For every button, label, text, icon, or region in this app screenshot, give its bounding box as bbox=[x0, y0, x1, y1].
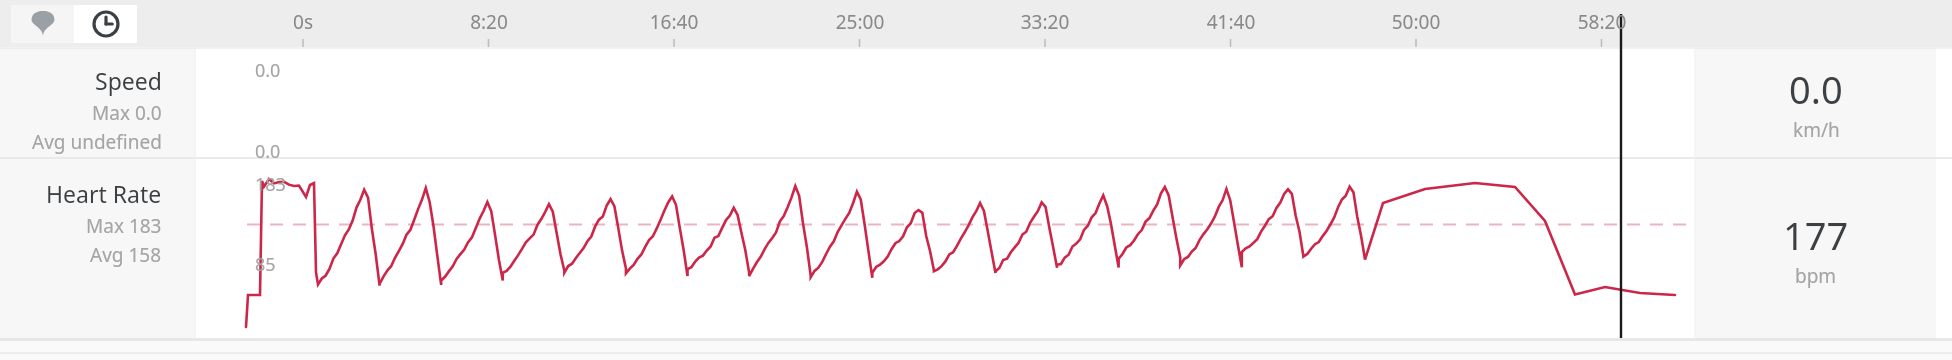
staticText: 0.0 bbox=[255, 139, 281, 164]
staticText: Max 0.0 bbox=[92, 100, 162, 126]
staticText: 16:40 bbox=[614, 9, 734, 35]
staticText: bpm bbox=[1795, 263, 1837, 289]
staticText: Speed bbox=[95, 65, 162, 96]
button[interactable]: 0.0 bbox=[1696, 48, 1936, 158]
staticText: Avg 158 bbox=[90, 242, 162, 268]
staticText: 0.0 bbox=[255, 58, 281, 83]
staticText: 33:20 bbox=[985, 9, 1105, 35]
staticText: 183 bbox=[255, 172, 286, 197]
staticText: 0.0 bbox=[1789, 63, 1843, 115]
staticText: 85 bbox=[255, 252, 276, 277]
button[interactable]: Show chart bbox=[74, 5, 137, 43]
staticText: 58:20 bbox=[1542, 9, 1662, 35]
button[interactable]: Show map bbox=[11, 5, 74, 43]
staticText: Max 183 bbox=[86, 213, 162, 239]
button[interactable]: 177 bbox=[1696, 159, 1936, 339]
staticText: 0s bbox=[243, 9, 363, 35]
staticText: Avg undefined bbox=[32, 129, 162, 155]
staticText: 25:00 bbox=[800, 9, 920, 35]
staticText: 50:00 bbox=[1356, 9, 1476, 35]
staticText: 41:40 bbox=[1171, 9, 1291, 35]
staticText: km/h bbox=[1793, 117, 1840, 143]
staticText: 177 bbox=[1783, 209, 1849, 261]
staticText: Heart Rate bbox=[46, 178, 162, 209]
staticText: 8:20 bbox=[429, 9, 549, 35]
